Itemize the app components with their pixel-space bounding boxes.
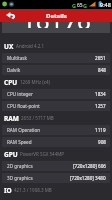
button[interactable]: CPU integer xyxy=(2,89,110,99)
staticText: Android 4.2.1 xyxy=(16,43,45,49)
staticText: CPU integer xyxy=(7,91,33,97)
staticText: G xyxy=(72,2,76,9)
staticText: 1834 xyxy=(95,91,106,97)
staticText: G xyxy=(83,2,87,9)
staticText: RAM Operation xyxy=(7,127,41,133)
staticText: 3D graphics xyxy=(7,175,33,181)
button[interactable]: Multitask xyxy=(2,53,110,63)
button[interactable]: Dalvik xyxy=(2,65,110,75)
staticText: UX xyxy=(4,42,14,51)
staticText: GPU xyxy=(4,150,18,159)
staticText: [720x1280] 3480 xyxy=(70,175,106,181)
staticText: RAM xyxy=(4,114,19,123)
staticText: Dalvik xyxy=(7,67,21,73)
staticText: 848 xyxy=(98,67,106,73)
button[interactable]: 3D graphics xyxy=(2,173,110,183)
staticText: 1269 MHz (x4) xyxy=(20,79,50,85)
button[interactable]: RAM Operation xyxy=(2,125,110,135)
staticText: 2651 xyxy=(95,55,106,61)
staticText: PowerVR SGX 544MP xyxy=(20,151,65,157)
staticText: 908 xyxy=(98,139,106,145)
staticText: [720x1280] 606 xyxy=(73,163,106,169)
staticText: RAM Speed xyxy=(7,139,32,145)
staticText: 16176 xyxy=(22,4,91,28)
staticText: 9:48 xyxy=(100,1,111,8)
staticText: Details xyxy=(46,12,67,20)
staticText: IO xyxy=(4,186,12,195)
button[interactable]: CPU float-point xyxy=(2,101,110,111)
staticText: 65 xyxy=(77,2,83,9)
staticText: 1119 xyxy=(95,127,106,133)
staticText: Multitask xyxy=(7,55,27,61)
button[interactable]: Back xyxy=(0,9,22,22)
button[interactable]: RAM Speed xyxy=(2,137,110,147)
staticText: CPU xyxy=(4,78,18,87)
staticText: 2653 / 5717 MB xyxy=(21,115,54,121)
staticText: CPU float-point xyxy=(7,103,40,109)
staticText: 2D graphics xyxy=(7,163,33,169)
staticText: 1257 xyxy=(95,103,106,109)
button[interactable]: 2D graphics xyxy=(2,161,110,171)
staticText: 421.3 / 1908.3 MB xyxy=(14,187,52,193)
